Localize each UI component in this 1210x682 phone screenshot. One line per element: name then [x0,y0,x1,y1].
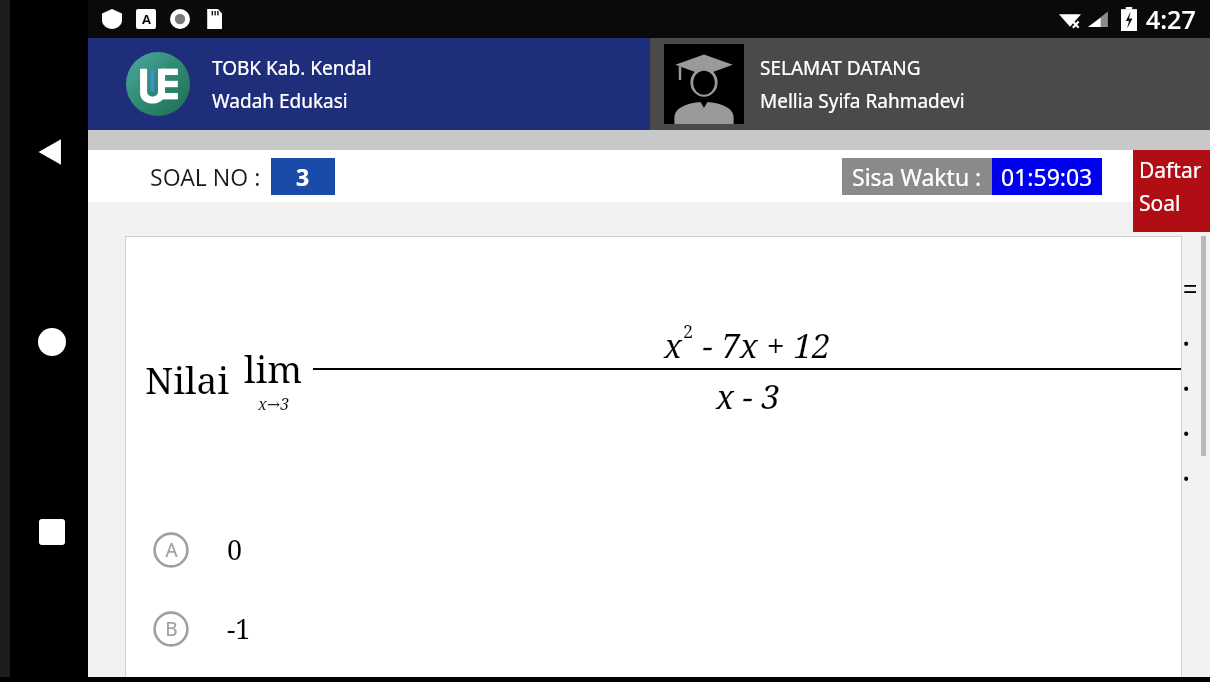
staticText: Wadah Edukasi [212,88,348,114]
staticText: A [165,537,178,563]
button[interactable]: A [153,531,1182,568]
button[interactable]: SOAL NO : [150,158,335,195]
staticText: x [664,323,683,368]
button[interactable]: Daftar [1133,150,1210,232]
button[interactable]: TOBK Kab. Kendal [88,38,650,130]
staticText: A [142,10,151,28]
staticText: lim [244,343,303,393]
staticText: SELAMAT DATANG [760,55,921,81]
button[interactable]: Sisa Waktu : [842,158,1102,195]
staticText: − 7x + 12 [694,323,831,368]
staticText: Daftar [1139,156,1202,185]
staticText: -1 [227,610,251,647]
staticText: 2 [683,319,694,344]
staticText: Soal [1139,189,1181,218]
staticText: x→3 [258,393,290,415]
staticText: Sisa Waktu : [852,161,982,192]
staticText: 3 [296,161,310,192]
staticText: SOAL NO : [150,161,261,192]
button[interactable]: SELAMAT DATANG [650,38,1210,130]
button[interactable]: B [153,610,1182,647]
staticText: 01:59:03 [1001,161,1093,192]
staticText: 0 [227,531,243,568]
staticText: Nilai [145,354,230,404]
button[interactable]: Recent apps [28,508,76,556]
staticText: x − 3 [716,374,780,419]
button[interactable]: Home [28,318,76,366]
staticText: 4:27 [1146,2,1196,36]
staticText: TOBK Kab. Kendal [212,55,372,81]
button[interactable]: Back [28,128,76,176]
staticText: Mellia Syifa Rahmadevi [760,88,965,114]
staticText: B [165,616,178,642]
